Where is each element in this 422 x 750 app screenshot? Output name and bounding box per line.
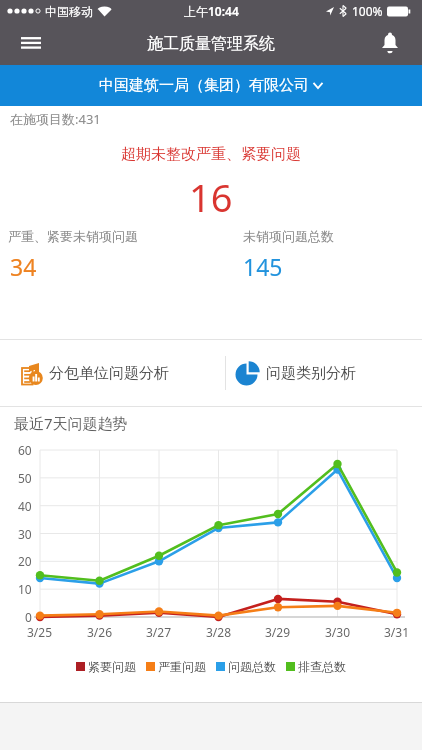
button[interactable]: 中国建筑一局（集团）有限公司 bbox=[0, 65, 422, 106]
staticText: 20 bbox=[18, 553, 32, 569]
button[interactable] bbox=[10, 28, 52, 58]
staticText: 排查总数 bbox=[298, 659, 346, 674]
staticText: 分包单位问题分析 bbox=[49, 364, 169, 383]
staticText: 60 bbox=[18, 442, 32, 458]
staticText: 最近7天问题趋势 bbox=[14, 413, 128, 433]
staticText: 50 bbox=[18, 470, 32, 486]
staticText: 10 bbox=[18, 581, 32, 597]
staticText: 3/30 bbox=[325, 624, 351, 640]
staticText: 3/29 bbox=[265, 624, 291, 640]
staticText: 问题类别分析 bbox=[266, 364, 356, 383]
staticText: 3/28 bbox=[206, 624, 232, 640]
staticText: 100% bbox=[352, 3, 383, 19]
staticText: 问题总数 bbox=[228, 659, 276, 674]
staticText: 16 bbox=[189, 171, 233, 223]
staticText: 3/25 bbox=[27, 624, 53, 640]
button[interactable] bbox=[372, 27, 408, 59]
staticText: 严重、紧要未销项问题 bbox=[8, 228, 138, 244]
staticText: 40 bbox=[18, 498, 32, 514]
staticText: 3/27 bbox=[146, 624, 172, 640]
staticText: 严重问题 bbox=[158, 659, 206, 674]
staticText: 超期未整改严重、紧要问题 bbox=[121, 145, 301, 164]
staticText: 紧要问题 bbox=[88, 659, 136, 674]
button[interactable]: 分包单位问题分析 bbox=[0, 340, 225, 406]
staticText: 34 bbox=[10, 251, 37, 282]
staticText: 0 bbox=[25, 609, 32, 625]
staticText: 未销项问题总数 bbox=[243, 228, 334, 244]
staticText: 施工质量管理系统 bbox=[147, 34, 275, 54]
staticText: 30 bbox=[18, 526, 32, 542]
staticText: 中国建筑一局（集团）有限公司 bbox=[99, 76, 309, 95]
staticText: 3/31 bbox=[384, 624, 410, 640]
staticText: 145 bbox=[243, 251, 283, 282]
staticText: 上午10:44 bbox=[184, 3, 239, 19]
staticText: 3/26 bbox=[87, 624, 113, 640]
staticText: 在施项目数:431 bbox=[10, 110, 101, 128]
button[interactable]: 问题类别分析 bbox=[226, 340, 422, 406]
staticText: 中国移动 bbox=[45, 4, 93, 19]
